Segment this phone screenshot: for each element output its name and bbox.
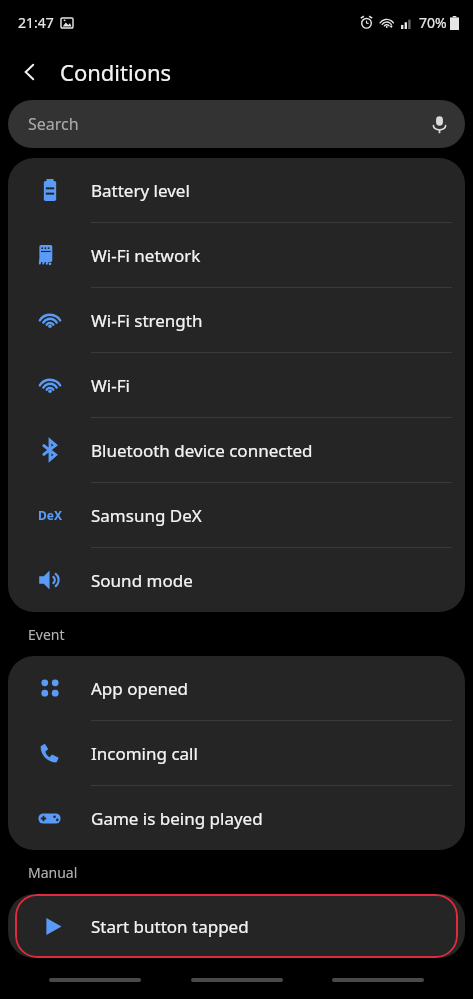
button[interactable]: DeX (8, 483, 465, 547)
other: Voice search (430, 115, 449, 134)
button[interactable]: Back (10, 52, 50, 92)
staticText: Samsung DeX (91, 504, 202, 527)
button[interactable]: Wi-Fi strength (8, 288, 465, 352)
staticText: Event (28, 625, 65, 644)
button[interactable]: Wi-Fi (8, 353, 465, 417)
staticText: Sound mode (91, 569, 193, 592)
button[interactable]: Wi-Fi network (8, 223, 465, 287)
button[interactable]: Sound mode (8, 548, 465, 612)
staticText: Wi-Fi (91, 374, 130, 397)
staticText: Search (28, 113, 430, 135)
button[interactable]: Start button tapped (15, 894, 458, 958)
staticText: Battery level (91, 179, 190, 202)
button[interactable]: Game is being played (8, 786, 465, 850)
staticText: Game is being played (91, 807, 263, 830)
staticText: 21:47 (18, 13, 54, 32)
button[interactable]: Search (8, 100, 465, 148)
staticText: DeX (38, 507, 62, 523)
button[interactable]: Battery level (8, 158, 465, 222)
staticText: Wi-Fi strength (91, 309, 203, 332)
staticText: Wi-Fi network (91, 244, 201, 267)
button[interactable]: Navigation (49, 978, 141, 982)
staticText: Start button tapped (91, 915, 249, 938)
staticText: Bluetooth device connected (91, 439, 313, 462)
button[interactable]: App opened (8, 656, 465, 720)
button[interactable]: Navigation (332, 978, 424, 982)
staticText: Incoming call (91, 742, 198, 765)
staticText: Conditions (60, 57, 172, 87)
button[interactable]: Incoming call (8, 721, 465, 785)
staticText: Manual (28, 863, 78, 882)
staticText: App opened (91, 677, 189, 700)
button[interactable]: Bluetooth device connected (8, 418, 465, 482)
staticText: 70% (419, 13, 447, 32)
button[interactable]: Navigation (191, 978, 283, 982)
